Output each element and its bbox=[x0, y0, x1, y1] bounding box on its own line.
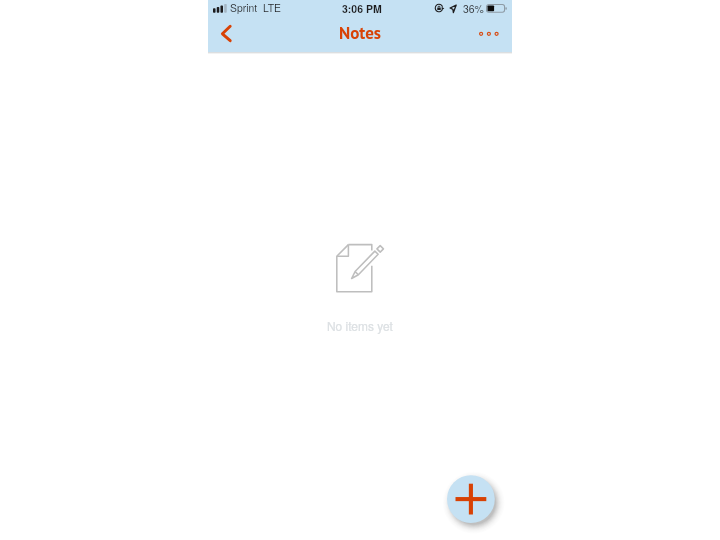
button[interactable]: Add note bbox=[436, 462, 508, 540]
button[interactable]: More options bbox=[472, 22, 506, 46]
staticText: 3:06 PM bbox=[342, 1, 382, 16]
staticText: 36% bbox=[463, 1, 484, 16]
staticText: Notes bbox=[339, 22, 381, 44]
staticText: LTE bbox=[263, 0, 281, 15]
staticText: Sprint bbox=[230, 0, 258, 15]
button[interactable]: Back bbox=[212, 20, 242, 52]
staticText: No items yet bbox=[327, 317, 393, 334]
